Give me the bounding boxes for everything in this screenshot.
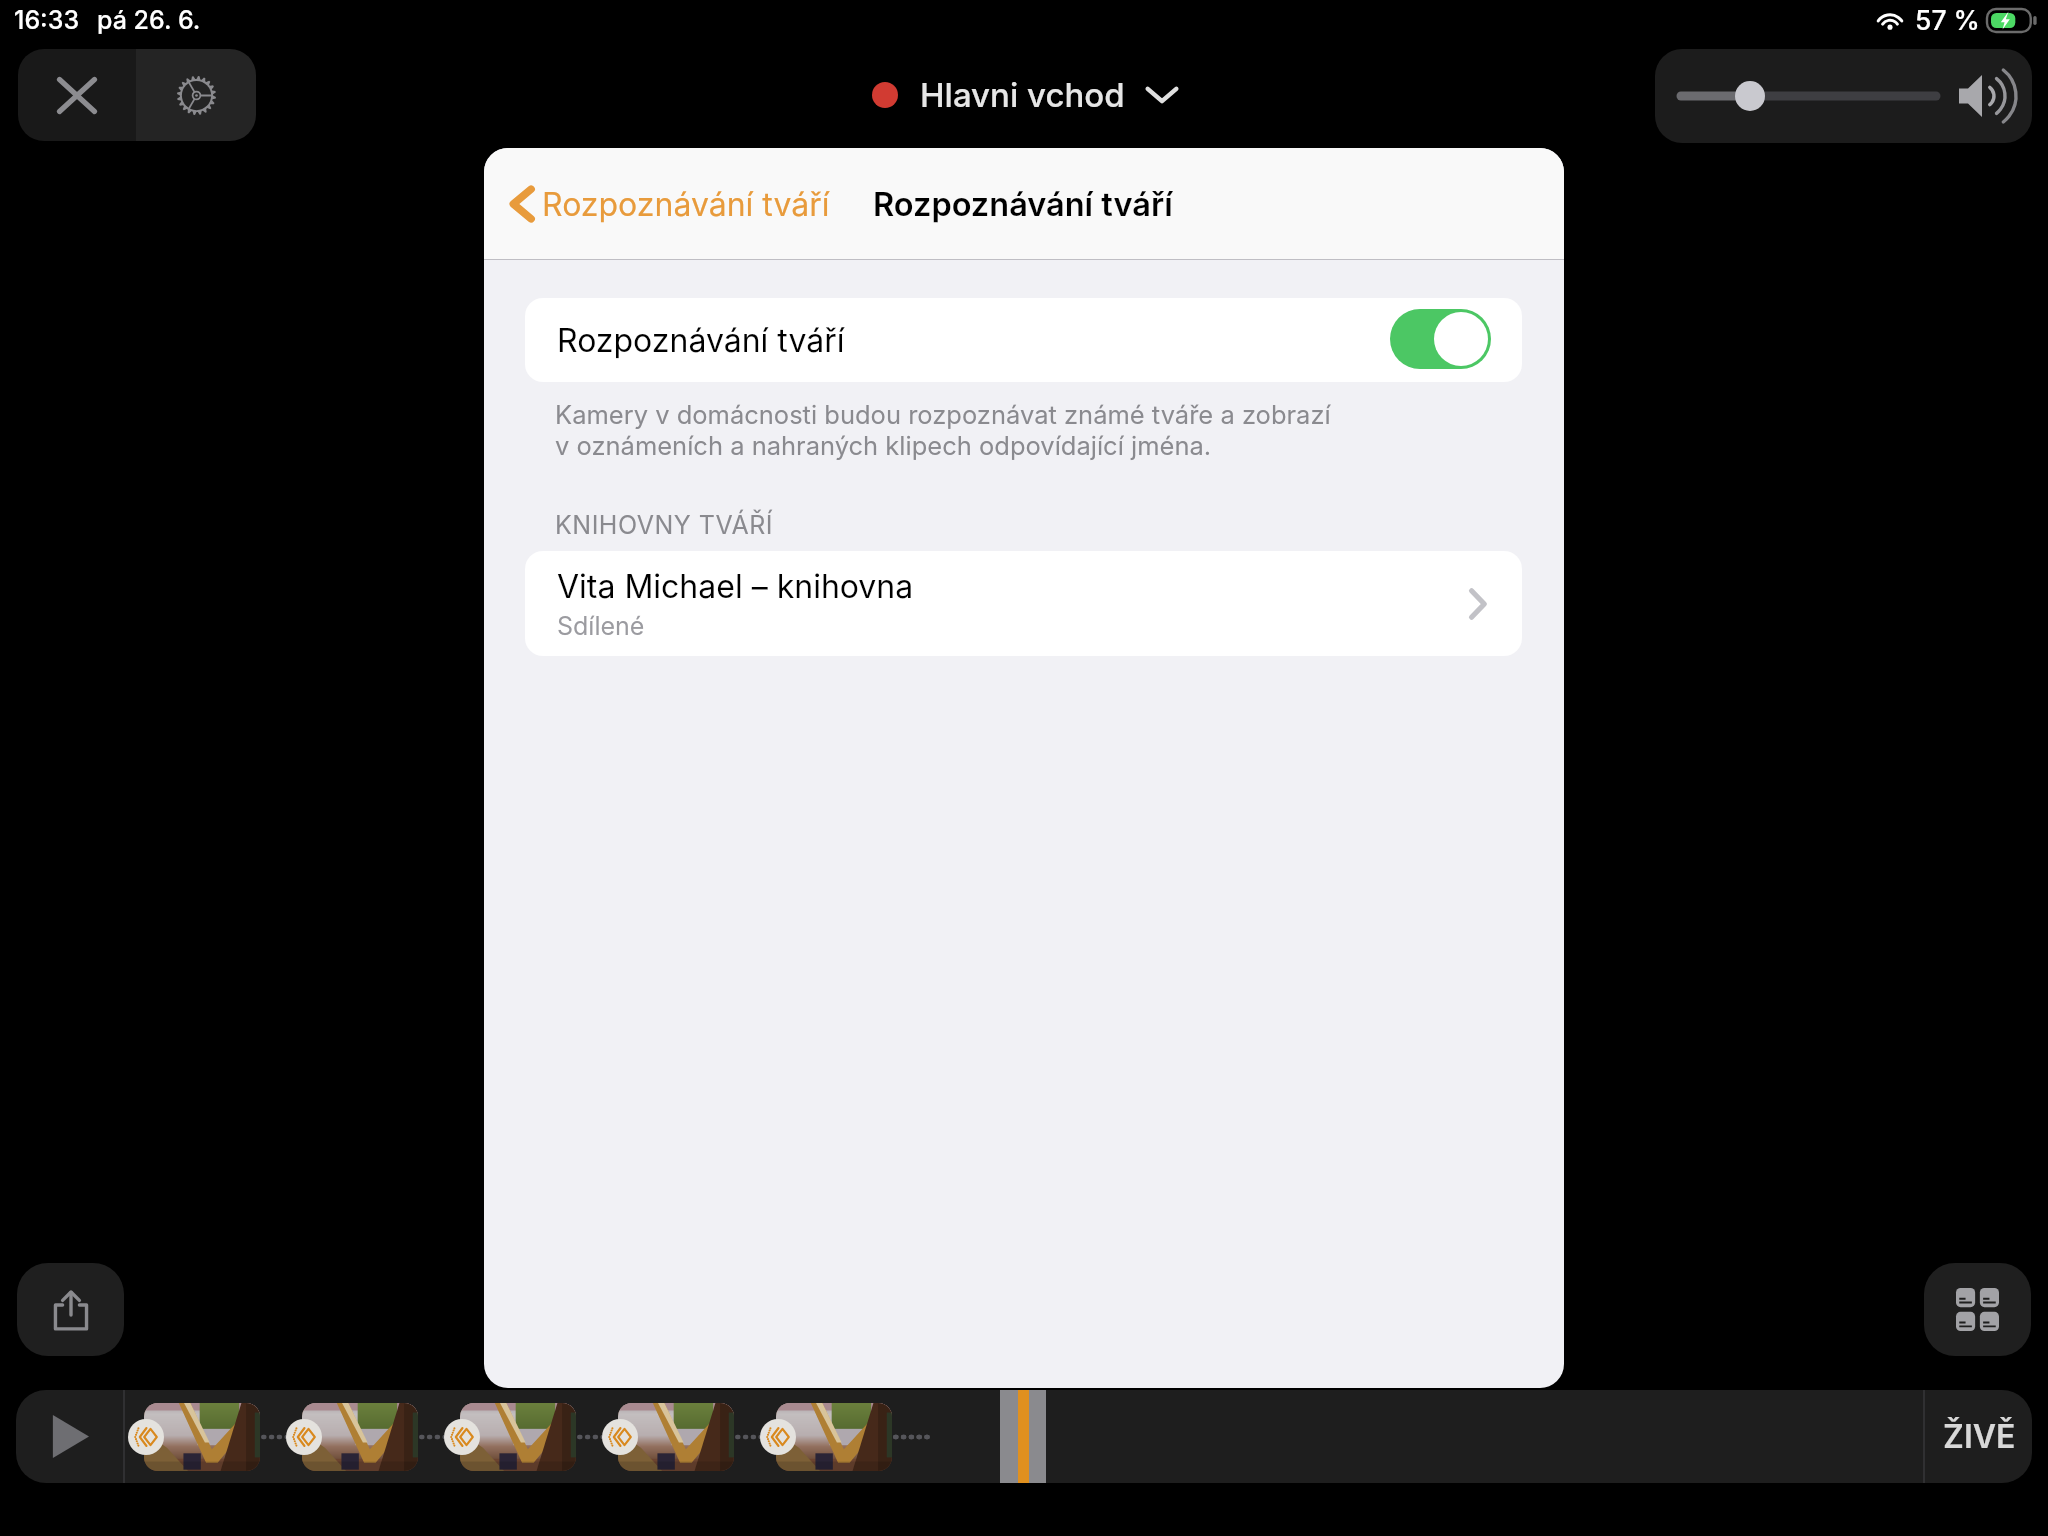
- button[interactable]: Rozpoznávání tváří: [525, 298, 1522, 382]
- staticText: 16:33: [14, 5, 80, 35]
- staticText: KNIHOVNY TVÁŘÍ: [555, 510, 774, 540]
- button[interactable]: Face recognition toggle: [1390, 309, 1491, 369]
- button[interactable]: Play: [16, 1390, 123, 1483]
- button[interactable]: Vita Michael – knihovna: [525, 551, 1522, 656]
- button[interactable]: Rozpoznávání tváří: [510, 148, 830, 260]
- staticText: Rozpoznávání tváří: [542, 185, 830, 224]
- button[interactable]: Share: [17, 1263, 124, 1356]
- staticText: Vita Michael – knihovna: [557, 567, 914, 606]
- staticText: ŽIVĚ: [1943, 1417, 2016, 1456]
- button[interactable]: Settings: [136, 49, 256, 141]
- staticText: v oznámeních a nahraných klipech odpovíd…: [555, 430, 1212, 461]
- button[interactable]: Hlavni vchod: [872, 60, 1179, 130]
- staticText: Kamery v domácnosti budou rozpoznávat zn…: [555, 399, 1331, 430]
- staticText: Sdílené: [557, 611, 645, 641]
- button[interactable]: Camera grid: [1924, 1263, 2031, 1356]
- staticText: Rozpoznávání tváří: [557, 321, 845, 360]
- staticText: pá 26. 6.: [97, 5, 201, 35]
- button[interactable]: ŽIVĚ: [1925, 1390, 2032, 1483]
- staticText: Rozpoznávání tváří: [873, 185, 1173, 224]
- staticText: Hlavni vchod: [920, 75, 1125, 115]
- button[interactable]: Volume: [1655, 49, 2032, 143]
- button[interactable]: Timeline: [125, 1390, 1923, 1483]
- button[interactable]: Close: [18, 49, 136, 141]
- staticText: 57 %: [1915, 4, 1980, 36]
